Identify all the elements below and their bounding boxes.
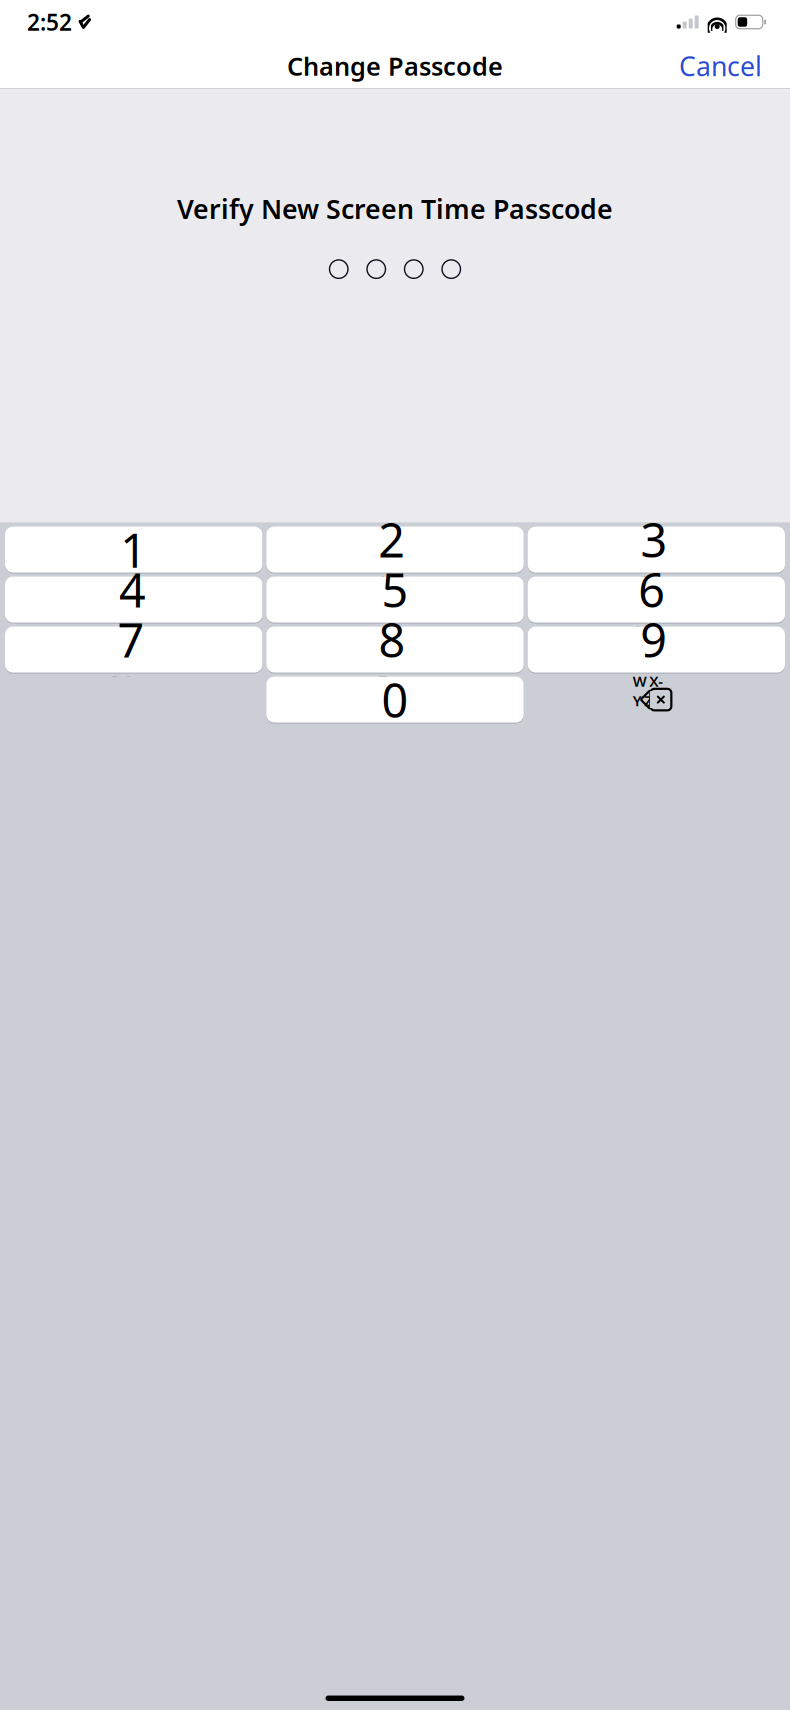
staticText: Change Passcode	[287, 49, 503, 83]
button[interactable]: 2	[266, 527, 524, 573]
staticText: JKL	[384, 621, 406, 660]
button[interactable]: 0	[266, 677, 524, 723]
button[interactable]: 5	[266, 577, 524, 623]
button[interactable]: 7	[5, 627, 262, 673]
button[interactable]: 3	[528, 527, 785, 573]
button[interactable]: 4	[5, 577, 262, 623]
staticText: GHI	[118, 621, 147, 660]
button[interactable]: 6	[528, 577, 785, 623]
button[interactable]: Cancel	[665, 40, 776, 92]
staticText: 9	[640, 608, 667, 670]
button[interactable]: 9	[528, 627, 785, 673]
staticText: Verify New Screen Time Passcode	[177, 191, 613, 226]
button[interactable]: Delete	[528, 677, 785, 723]
staticText: 2	[378, 508, 405, 570]
staticText: TUV	[379, 671, 405, 710]
staticText: 8	[379, 608, 406, 670]
staticText: 0	[381, 669, 408, 731]
staticText: MNO	[635, 621, 668, 660]
button[interactable]: 8	[266, 627, 524, 673]
button[interactable]: 1	[5, 527, 262, 573]
staticText: ABC	[378, 571, 405, 610]
staticText: 5	[381, 558, 408, 620]
staticText: Cancel	[679, 48, 762, 84]
staticText: 3	[640, 508, 667, 570]
staticText: WXYZ	[633, 671, 674, 710]
staticText: 6	[638, 558, 665, 620]
staticText: 7	[117, 608, 144, 670]
staticText: DEF	[641, 571, 667, 610]
staticText: PQRS	[111, 671, 151, 710]
staticText: 2:52	[27, 7, 72, 37]
staticText: 1	[120, 519, 147, 581]
staticText: 4	[119, 558, 146, 620]
